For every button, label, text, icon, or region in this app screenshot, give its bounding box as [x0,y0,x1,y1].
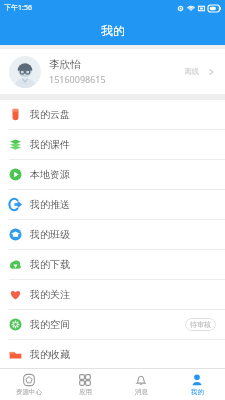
button[interactable]: 资源中心 [0,368,57,400]
button[interactable]: 我的收藏 [0,340,225,368]
staticText: 我的下载 [30,258,216,271]
staticText: 我的班级 [30,228,216,241]
staticText: 资源中心 [16,388,42,396]
button[interactable]: 李欣怡 [0,49,225,94]
button[interactable]: 我的下载 [0,250,225,279]
button[interactable]: 我的云盘 [0,100,225,129]
button[interactable]: 我的关注 [0,280,225,309]
staticText: 应用 [79,388,92,396]
staticText: 15160098615 [49,73,106,85]
staticText: 我的课件 [30,138,216,151]
staticText: 我的空间 [30,318,185,331]
staticText: 我的 [101,23,125,38]
button[interactable]: 我的班级 [0,220,225,249]
staticText: 我的收藏 [30,348,216,361]
staticText: 待审核 [190,320,211,329]
staticText: 我的推送 [30,198,216,211]
button[interactable]: 消息 [113,368,169,400]
button[interactable]: 我的课件 [0,130,225,159]
button[interactable]: 本地资源 [0,160,225,189]
staticText: 下午1:56 [4,3,32,13]
button[interactable]: 我的空间 [0,310,225,339]
button[interactable]: 应用 [57,368,113,400]
staticText: 我的云盘 [30,108,216,121]
staticText: 我的 [191,388,204,396]
staticText: 消息 [135,388,148,396]
button[interactable]: 我的 [169,368,225,400]
staticText: 离线 [184,67,199,76]
staticText: 本地资源 [30,168,216,181]
staticText: 李欣怡 [49,58,81,71]
staticText: 我的关注 [30,288,216,301]
button[interactable]: 我的推送 [0,190,225,219]
